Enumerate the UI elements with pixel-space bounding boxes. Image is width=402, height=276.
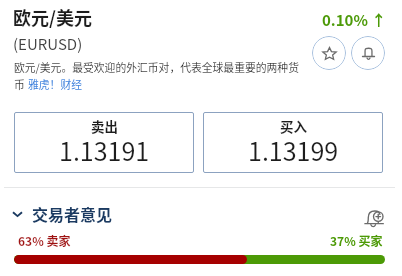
staticText: 37% 买家 [330,232,383,249]
button[interactable]: 交易者意见 [8,199,117,228]
button[interactable]: Create price alert [362,208,385,229]
staticText: (EURUSD) [13,33,83,55]
button[interactable]: 买入 [203,112,383,173]
button[interactable]: 63 percent sellers, 37 percent buyers [14,255,385,264]
staticText: 1.13191 [59,132,150,168]
staticText: 0.10% ↑ [322,9,387,31]
staticText: 雅虎！财经 [28,76,82,92]
button[interactable]: 欧元/美元 [13,4,92,30]
staticText: 欧元/美元。最受欢迎的外汇币对，代表全球最重要的两种货 [14,59,299,75]
button[interactable]: Add to watchlist [312,36,346,70]
button[interactable]: 雅虎！财经 [28,76,82,92]
staticText: 交易者意见 [32,202,113,225]
staticText: 1.13199 [248,132,339,168]
button[interactable]: 卖出 [14,112,194,173]
staticText: 卖出 [91,116,118,136]
staticText: 币 [14,76,28,92]
staticText: 63% 卖家 [18,232,71,249]
staticText: 欧元/美元 [13,4,92,30]
button[interactable]: Set price alert [351,36,385,70]
staticText: 买入 [280,116,307,136]
